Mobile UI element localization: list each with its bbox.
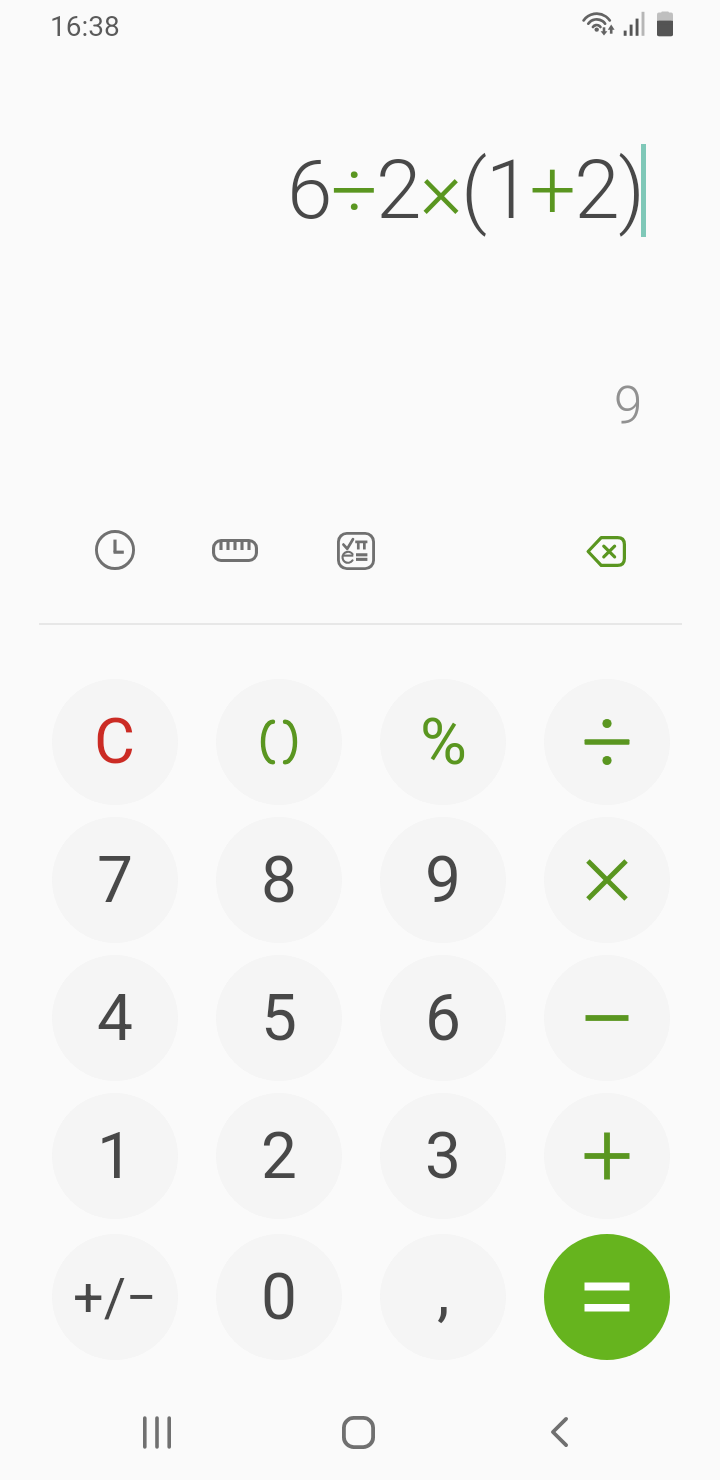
staticText: C (94, 705, 136, 779)
button[interactable]: Add (544, 1093, 670, 1219)
button[interactable]: 6 (380, 955, 506, 1081)
button[interactable]: History (76, 511, 154, 589)
button[interactable]: 1 (52, 1093, 178, 1219)
button[interactable]: +/− (52, 1234, 178, 1360)
staticText: 9 (425, 843, 461, 918)
button[interactable]: , (380, 1234, 506, 1360)
button[interactable]: Parentheses (216, 679, 342, 805)
staticText: 4 (97, 981, 133, 1056)
staticText: 2 (261, 1119, 297, 1194)
staticText: 3 (425, 1119, 461, 1194)
staticText: 6 (425, 981, 461, 1056)
staticText: 6÷2×(1+2) (287, 142, 644, 238)
button[interactable]: Unit converter (196, 511, 274, 589)
staticText: 8 (261, 843, 297, 918)
button[interactable]: 3 (380, 1093, 506, 1219)
button[interactable]: 8 (216, 817, 342, 943)
button[interactable]: Scientific calculator (317, 512, 395, 590)
button[interactable]: % (380, 679, 506, 805)
button[interactable]: 2 (216, 1093, 342, 1219)
staticText: 9 (614, 376, 643, 436)
button[interactable]: 5 (216, 955, 342, 1081)
button[interactable]: Recents (121, 1396, 193, 1468)
staticText: +/− (73, 1266, 157, 1329)
button[interactable]: 0 (216, 1234, 342, 1360)
button[interactable]: 4 (52, 955, 178, 1081)
button[interactable]: Divide (544, 679, 670, 805)
button[interactable]: Equals (544, 1234, 670, 1360)
staticText: 1 (97, 1119, 133, 1194)
button[interactable]: Multiply (544, 817, 670, 943)
staticText: % (420, 705, 467, 780)
staticText: 0 (261, 1260, 297, 1335)
button[interactable]: C (52, 679, 178, 805)
button[interactable]: Backspace (567, 512, 645, 590)
staticText: 5 (261, 981, 297, 1056)
button[interactable]: 7 (52, 817, 178, 943)
button[interactable]: Home (322, 1396, 394, 1468)
button[interactable]: Subtract (544, 955, 670, 1081)
staticText: 16:38 (50, 10, 120, 43)
button[interactable]: Back (523, 1396, 595, 1468)
button[interactable]: 9 (380, 817, 506, 943)
staticText: , (437, 1255, 450, 1330)
staticText: 7 (97, 843, 133, 918)
